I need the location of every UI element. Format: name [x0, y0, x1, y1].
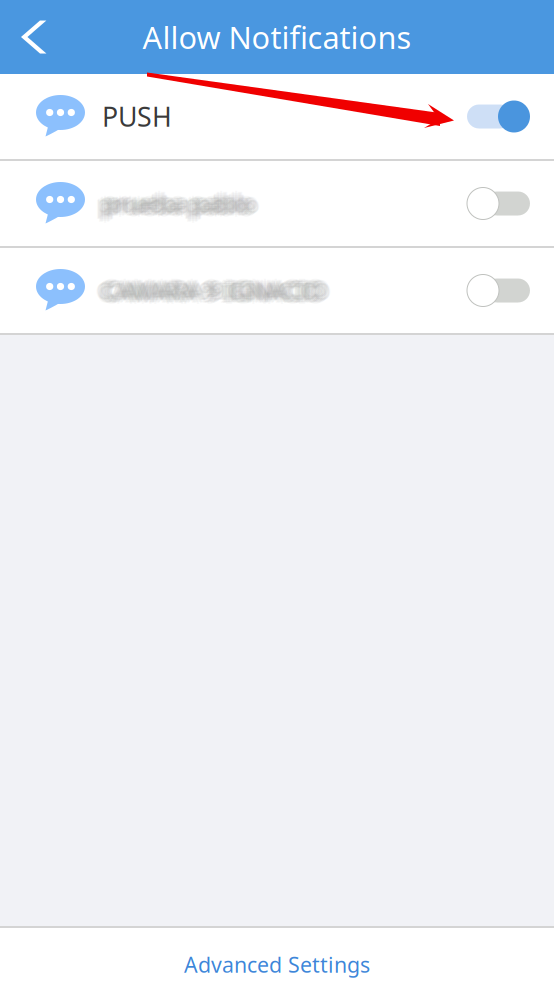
- staticText: prueba pablo: [99, 185, 251, 216]
- staticText: prueba pablo: [102, 188, 254, 219]
- staticText: CAMARA 9 IGNACIO: [102, 275, 325, 306]
- staticText: prueba pablo: [106, 188, 258, 219]
- staticText: CAMARA 9 IGNACIO: [105, 278, 328, 309]
- staticText: prueba pablo: [105, 185, 257, 216]
- staticText: prueba pablo: [99, 191, 251, 222]
- staticText: CAMARA 9 IGNACIO: [99, 278, 322, 309]
- staticText: CAMARA 9 IGNACIO: [100, 275, 323, 306]
- staticText: prueba pablo: [100, 186, 252, 217]
- staticText: CAMARA 9 IGNACIO: [104, 273, 327, 304]
- staticText: PUSH: [102, 99, 172, 134]
- staticText: prueba pablo: [98, 190, 250, 221]
- staticText: CAMARA 9 IGNACIO: [102, 277, 325, 308]
- staticText: CAMARA 9 IGNACIO: [102, 273, 325, 304]
- staticText: CAMARA 9 IGNACIO: [105, 272, 328, 303]
- staticText: CAMARA 9 IGNACIO: [98, 275, 321, 306]
- staticText: CAMARA 9 IGNACIO: [98, 277, 321, 308]
- staticText: prueba pablo: [106, 186, 258, 217]
- staticText: prueba pablo: [95, 188, 247, 219]
- staticText: Allow Notifications: [142, 17, 411, 57]
- staticText: CAMARA 9 IGNACIO: [102, 271, 325, 302]
- staticText: prueba pablo: [104, 190, 256, 221]
- staticText: prueba pablo: [100, 190, 252, 221]
- button[interactable]: Advanced Settings: [0, 928, 554, 1001]
- staticText: prueba pablo: [96, 188, 248, 219]
- staticText: Advanced Settings: [184, 950, 370, 979]
- staticText: CAMARA 9 IGNACIO: [104, 277, 327, 308]
- staticText: prueba pablo: [96, 187, 248, 218]
- staticText: prueba pablo: [98, 186, 250, 217]
- staticText: CAMARA 9 IGNACIO: [109, 275, 332, 306]
- staticText: CAMARA 9 IGNACIO: [100, 277, 323, 308]
- staticText: prueba pablo: [102, 190, 254, 221]
- staticText: CAMARA 9 IGNACIO: [96, 275, 319, 306]
- staticText: CAMARA 9 IGNACIO: [98, 273, 321, 304]
- staticText: prueba pablo: [102, 184, 254, 215]
- staticText: CAMARA 9 IGNACIO: [104, 275, 327, 306]
- staticText: CAMARA 9 IGNACIO: [102, 279, 325, 310]
- button[interactable]: PUSH: [0, 74, 554, 159]
- staticText: prueba pablo: [104, 188, 256, 219]
- button[interactable]: prueba pablo: [0, 161, 554, 246]
- staticText: CAMARA 9 IGNACIO: [106, 273, 329, 304]
- staticText: prueba pablo: [108, 188, 260, 219]
- staticText: prueba pablo: [106, 190, 258, 221]
- staticText: prueba pablo: [102, 186, 254, 217]
- staticText: CAMARA 9 IGNACIO: [106, 277, 329, 308]
- staticText: CAMARA 9 IGNACIO: [99, 272, 322, 303]
- staticText: prueba pablo: [100, 188, 252, 219]
- staticText: prueba pablo: [102, 192, 254, 223]
- staticText: CAMARA 9 IGNACIO: [95, 275, 318, 306]
- staticText: CAMARA 9 IGNACIO: [107, 272, 330, 303]
- button[interactable]: CAMARA 9 IGNACIO: [0, 248, 554, 333]
- staticText: prueba pablo: [105, 191, 257, 222]
- staticText: prueba pablo: [98, 188, 250, 219]
- staticText: CAMARA 9 IGNACIO: [108, 275, 331, 306]
- staticText: CAMARA 9 IGNACIO: [100, 273, 323, 304]
- staticText: prueba pablo: [97, 191, 249, 222]
- staticText: CAMARA 9 IGNACIO: [97, 278, 320, 309]
- staticText: CAMARA 9 IGNACIO: [106, 275, 329, 306]
- staticText: prueba pablo: [108, 189, 260, 220]
- staticText: prueba pablo: [109, 188, 261, 219]
- staticText: CAMARA 9 IGNACIO: [96, 274, 319, 305]
- button[interactable]: Back: [0, 0, 47, 74]
- staticText: CAMARA 9 IGNACIO: [108, 276, 331, 307]
- staticText: prueba pablo: [104, 186, 256, 217]
- staticText: prueba pablo: [107, 185, 259, 216]
